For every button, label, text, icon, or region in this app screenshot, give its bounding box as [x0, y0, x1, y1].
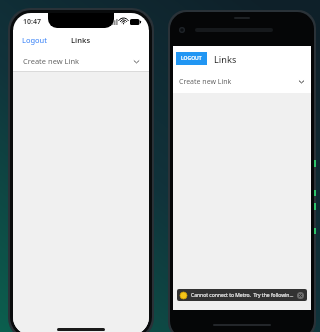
button[interactable]: Create new Link: [173, 70, 311, 93]
button[interactable]: Dismiss: [297, 292, 304, 299]
staticText: LOGOUT: [181, 55, 202, 62]
staticText: Logout: [22, 35, 47, 45]
button[interactable]: Cannot connect to Metro. Try the followi…: [177, 289, 307, 301]
staticText: Cannot connect to Metro. Try the followi…: [191, 292, 294, 299]
staticText: Create new Link: [179, 77, 232, 87]
button[interactable]: Create new Link: [13, 50, 149, 72]
staticText: Links: [214, 53, 237, 65]
button[interactable]: LOGOUT: [176, 52, 207, 65]
button[interactable]: Logout: [13, 32, 56, 48]
staticText: Links: [71, 35, 91, 45]
staticText: Create new Link: [23, 56, 80, 66]
staticText: 10:47: [23, 17, 41, 27]
